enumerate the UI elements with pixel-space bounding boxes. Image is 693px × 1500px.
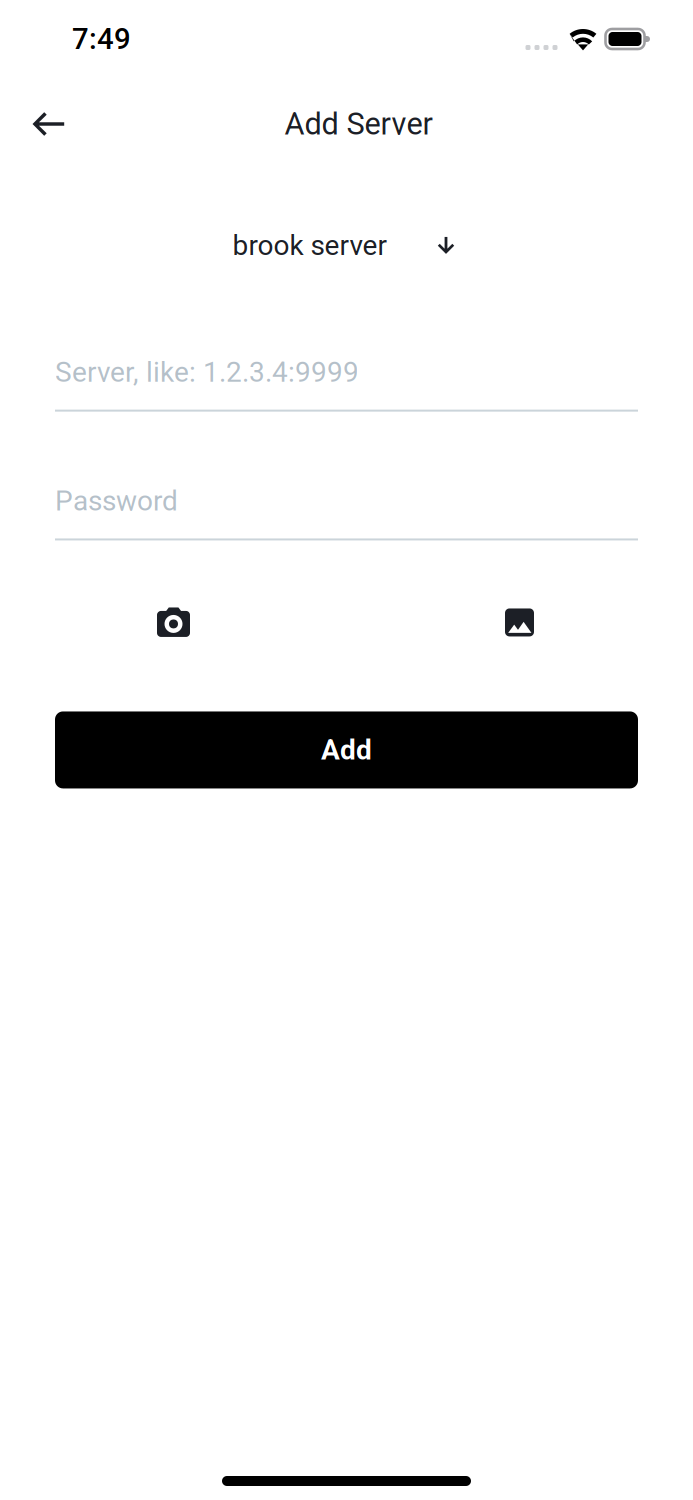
button[interactable]: Take photo — [147, 597, 200, 647]
staticText: 7:49 — [72, 22, 131, 56]
staticText: Add Server — [284, 106, 432, 142]
staticText: Password — [55, 485, 178, 517]
button[interactable]: Server, like: 1.2.3.4:9999 — [55, 356, 638, 412]
button[interactable]: Password — [55, 485, 638, 540]
button[interactable]: Add — [55, 711, 638, 788]
button[interactable]: Choose from library — [495, 598, 544, 646]
button[interactable]: Back — [0, 96, 89, 152]
staticText: brook server — [232, 229, 386, 262]
staticText: Server, like: 1.2.3.4:9999 — [55, 356, 359, 389]
staticText: Add — [321, 733, 372, 766]
button[interactable]: brook server — [232, 219, 454, 272]
